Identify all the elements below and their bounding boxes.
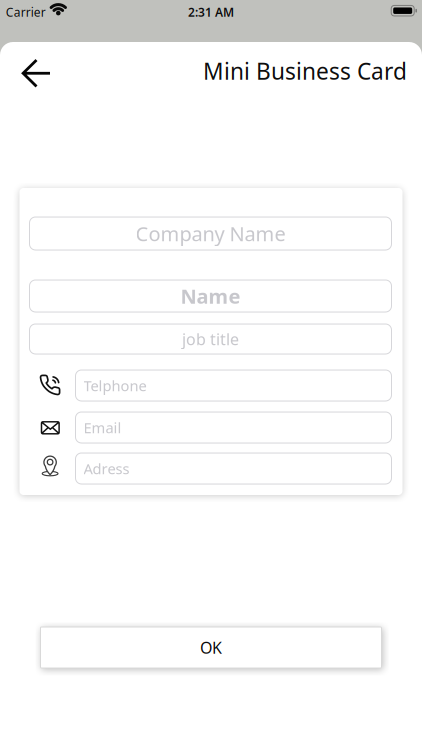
staticText: Name [180, 283, 240, 309]
staticText: job title [182, 328, 239, 350]
button[interactable]: job title [29, 324, 391, 354]
staticText: Company Name [135, 220, 285, 247]
button[interactable]: OK [40, 627, 381, 668]
button[interactable]: Company Name [29, 217, 391, 250]
staticText: 2:31 AM [188, 4, 234, 20]
staticText: OK [200, 637, 222, 658]
staticText: Email [83, 418, 121, 437]
button[interactable]: Email [75, 412, 391, 443]
button[interactable]: Back [13, 50, 60, 96]
staticText: Adress [83, 459, 129, 478]
button[interactable]: Name [29, 280, 391, 312]
button[interactable]: Telphone [75, 370, 391, 401]
staticText: Telphone [83, 376, 146, 395]
staticText: Mini Business Card [203, 56, 407, 86]
button[interactable]: Adress [75, 453, 391, 484]
staticText: Carrier [6, 4, 46, 20]
